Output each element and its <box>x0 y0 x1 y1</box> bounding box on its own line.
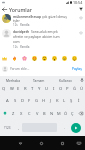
staticText: Tamam <box>33 78 45 82</box>
button[interactable]: İ <box>75 95 82 107</box>
button[interactable]: ?123 <box>0 119 14 136</box>
button[interactable]: Back <box>10 136 31 150</box>
staticText: T <box>31 86 34 92</box>
button[interactable]: Back <box>0 5 9 13</box>
button[interactable]: React <box>49 54 59 62</box>
button[interactable]: W <box>8 83 15 95</box>
button[interactable]: Like <box>79 16 83 20</box>
button[interactable]: React <box>19 54 29 62</box>
staticText: Kullanıcı <box>59 78 72 82</box>
button[interactable]: N <box>48 107 55 119</box>
staticText: Ş <box>70 98 73 104</box>
staticText: Ü <box>80 86 84 92</box>
staticText: Yanıtla <box>20 45 30 49</box>
staticText: Z <box>12 111 15 116</box>
staticText: S <box>14 98 17 104</box>
staticText: N <box>50 111 54 116</box>
button[interactable]: React <box>9 54 19 62</box>
button[interactable]: F <box>26 95 33 107</box>
staticText: O <box>59 86 63 92</box>
button[interactable]: Y <box>36 83 43 95</box>
staticText: V <box>36 111 39 116</box>
staticText: Q <box>2 86 6 92</box>
button[interactable]: Ç <box>69 107 76 119</box>
button[interactable]: Like <box>79 31 83 35</box>
staticText: P <box>66 86 69 92</box>
staticText: H <box>42 98 46 104</box>
button[interactable]: T <box>29 83 36 95</box>
staticText: ofretin ve paylaşın abicim tum <box>13 34 60 38</box>
staticText: I <box>53 86 55 92</box>
staticText: Sonsuzluk emçek <box>31 29 58 33</box>
staticText: Ğ <box>73 86 77 92</box>
button[interactable]: M <box>55 107 62 119</box>
staticText: E <box>17 86 20 92</box>
staticText: Yorumlar <box>9 6 32 13</box>
button[interactable]: Backspace <box>76 107 85 119</box>
staticText: çok güzel olmuş <box>42 14 67 18</box>
button[interactable]: Recents <box>52 136 73 150</box>
button[interactable]: Kullanıcı <box>52 76 78 83</box>
staticText: D <box>21 98 25 104</box>
staticText: A <box>6 98 9 104</box>
button[interactable]: Z <box>9 107 17 119</box>
button[interactable]: Paylaş <box>71 66 83 72</box>
button[interactable]: React <box>59 54 69 62</box>
button[interactable]: Send <box>71 123 81 133</box>
button[interactable]: Q <box>0 83 8 95</box>
button[interactable]: O <box>57 83 64 95</box>
button[interactable]: , <box>14 119 22 136</box>
button[interactable]: G <box>33 95 40 107</box>
button[interactable]: X <box>17 107 25 119</box>
button[interactable]: Sort <box>76 5 85 13</box>
button[interactable]: Tamam <box>26 76 52 83</box>
staticText: 10:54 <box>73 0 83 5</box>
button[interactable]: H <box>40 95 47 107</box>
button[interactable]: mükemmelhesap <box>0 13 85 27</box>
button[interactable]: React <box>69 54 79 62</box>
button[interactable]: P <box>64 83 71 95</box>
button[interactable]: Merhaba <box>0 76 26 83</box>
button[interactable]: K <box>54 95 61 107</box>
staticText: J <box>50 98 52 104</box>
button[interactable]: davidpeth <box>0 27 85 49</box>
button[interactable]: React <box>29 54 39 62</box>
button[interactable]: React <box>39 54 49 62</box>
staticText: 12s <box>13 23 18 27</box>
button[interactable]: C <box>25 107 33 119</box>
button[interactable]: A <box>3 95 11 107</box>
button[interactable]: Shift <box>0 107 9 119</box>
button[interactable]: R <box>22 83 29 95</box>
staticText: U <box>45 86 49 92</box>
button[interactable]: D <box>19 95 26 107</box>
button[interactable]: Hide keyboard <box>73 136 85 150</box>
button[interactable]: Ö <box>62 107 69 119</box>
button[interactable]: V <box>33 107 41 119</box>
staticText: Merhaba <box>6 78 20 82</box>
button[interactable]: I <box>50 83 57 95</box>
button[interactable]: U <box>43 83 50 95</box>
button[interactable]: S <box>11 95 19 107</box>
button[interactable]: Home <box>31 136 52 150</box>
button[interactable]: Ğ <box>71 83 78 95</box>
staticText: B <box>43 111 46 116</box>
staticText: 12s <box>13 45 18 49</box>
button[interactable]: React <box>0 54 9 62</box>
button[interactable]: B <box>41 107 48 119</box>
staticText: İ <box>78 98 80 104</box>
button[interactable]: E <box>15 83 22 95</box>
button[interactable]: Ü <box>78 83 85 95</box>
staticText: . <box>64 125 65 130</box>
staticText: Y <box>38 86 41 92</box>
button[interactable]: L <box>61 95 68 107</box>
button[interactable]: Ş <box>68 95 75 107</box>
staticText: Ö <box>64 111 68 116</box>
staticText: W <box>10 86 14 92</box>
staticText: R <box>24 86 27 92</box>
button[interactable]: J <box>47 95 54 107</box>
button[interactable]: Voice input <box>78 76 85 83</box>
staticText: Yorum ekle... <box>10 67 30 71</box>
staticText: tşler <box>13 18 20 22</box>
